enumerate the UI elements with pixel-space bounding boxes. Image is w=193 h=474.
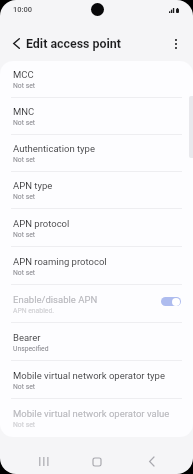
button[interactable]: MCC bbox=[0, 61, 193, 98]
button[interactable]: APN roaming protocol bbox=[0, 247, 193, 285]
staticText: Bearer bbox=[13, 332, 41, 343]
staticText: Enable/disable APN bbox=[13, 294, 98, 305]
button[interactable]: Authentication type bbox=[0, 135, 193, 172]
button[interactable]: Enable or disable APN bbox=[161, 297, 181, 306]
staticText: Not set bbox=[13, 156, 35, 164]
staticText: APN type bbox=[13, 180, 53, 191]
staticText: Mobile virtual network operator value bbox=[13, 408, 170, 419]
button[interactable]: Enable/disable APN bbox=[0, 285, 193, 323]
staticText: Not set bbox=[13, 383, 35, 391]
staticText: APN enabled. bbox=[13, 307, 55, 315]
staticText: Not set bbox=[13, 119, 35, 127]
button[interactable]: Recent apps bbox=[25, 443, 61, 474]
button[interactable]: Mobile virtual network operator type bbox=[0, 361, 193, 399]
staticText: Mobile virtual network operator type bbox=[13, 370, 165, 381]
staticText: Not set bbox=[13, 269, 35, 277]
staticText: Not set bbox=[13, 421, 35, 429]
button[interactable]: Navigate up bbox=[0, 27, 33, 60]
button[interactable]: APN protocol bbox=[0, 209, 193, 247]
button[interactable]: Back bbox=[133, 443, 169, 474]
button[interactable]: Home bbox=[79, 443, 115, 474]
staticText: APN protocol bbox=[13, 218, 70, 229]
button[interactable]: Mobile virtual network operator value bbox=[0, 399, 193, 437]
staticText: Edit access point bbox=[26, 36, 121, 51]
staticText: Not set bbox=[13, 193, 35, 201]
button[interactable]: APN type bbox=[0, 172, 193, 209]
staticText: APN roaming protocol bbox=[13, 256, 107, 267]
button[interactable]: MNC bbox=[0, 98, 193, 135]
staticText: Not set bbox=[13, 231, 35, 239]
staticText: Unspecified bbox=[13, 345, 49, 353]
staticText: Authentication type bbox=[13, 143, 95, 154]
button[interactable]: More options bbox=[159, 27, 193, 60]
staticText: MNC bbox=[13, 106, 35, 117]
button[interactable]: Bearer bbox=[0, 323, 193, 361]
staticText: MCC bbox=[13, 69, 34, 80]
staticText: Not set bbox=[13, 82, 35, 90]
staticText: 10:00 bbox=[13, 5, 33, 14]
